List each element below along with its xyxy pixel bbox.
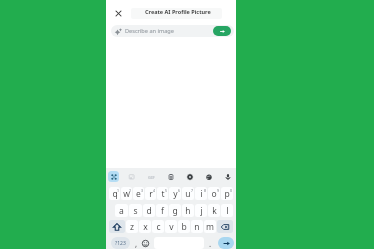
button[interactable]: g [169,204,181,217]
button[interactable]: Emoji [139,237,152,249]
staticText: 1 [117,188,120,193]
staticText: d [146,205,152,217]
staticText: . [209,238,212,249]
staticText: m [206,221,214,233]
button[interactable]: s [129,204,142,217]
button[interactable]: l [221,204,233,217]
staticText: a [119,205,124,217]
button[interactable]: w [121,187,132,200]
staticText: c [156,221,161,233]
button[interactable]: b [178,220,190,233]
staticText: 9 [217,188,220,193]
button[interactable]: e [133,187,144,200]
staticText: h [185,205,191,217]
button[interactable]: , [130,237,143,249]
button[interactable]: Close [112,7,125,20]
button[interactable]: n [191,220,203,233]
staticText: 8 [204,188,207,193]
staticText: y [173,188,178,200]
staticText: q [112,188,118,200]
button[interactable]: z [126,220,138,233]
staticText: x [143,221,148,233]
staticText: w [123,188,130,200]
button[interactable]: y [169,187,181,200]
button[interactable]: o [208,187,220,200]
staticText: g [172,205,178,217]
staticText: i [200,188,203,200]
button[interactable]: x [139,220,151,233]
button[interactable]: . [204,237,216,249]
staticText: 3 [141,188,144,193]
button[interactable]: Backspace [217,220,233,233]
staticText: k [212,205,217,217]
button[interactable]: Send [213,26,231,36]
staticText: 6 [178,188,181,193]
button[interactable]: f [156,204,168,217]
staticText: l [226,205,229,217]
button[interactable]: Enter [218,237,234,249]
button[interactable]: Photos [126,171,138,183]
staticText: 2 [129,188,132,193]
button[interactable]: a [115,204,128,217]
button[interactable]: Google search [108,171,119,182]
button[interactable]: v [165,220,177,233]
staticText: z [130,221,134,233]
button[interactable]: u [182,187,194,200]
staticText: , [135,238,138,249]
button[interactable]: GIF [145,171,157,183]
staticText: p [224,188,230,200]
staticText: 4 [153,188,156,193]
button[interactable]: Voice input [222,171,234,183]
button[interactable]: t [157,187,168,200]
staticText: b [181,221,187,233]
button[interactable]: Themes [203,171,215,183]
staticText: 7 [191,188,194,193]
staticText: o [211,188,217,200]
button[interactable]: q [109,187,120,200]
button[interactable]: Clipboard [165,171,177,183]
button[interactable]: ?123 [111,237,130,249]
staticText: e [136,188,141,200]
button[interactable]: Shift [109,220,125,233]
staticText: s [133,205,138,217]
staticText: u [185,188,191,200]
staticText: n [194,221,200,233]
button[interactable]: k [208,204,220,217]
button[interactable]: p [221,187,233,200]
staticText: Create AI Profile Picture [145,8,211,15]
staticText: v [169,221,174,233]
button[interactable]: h [182,204,194,217]
staticText: 0 [230,188,233,193]
staticText: r [149,188,153,200]
button[interactable]: r [145,187,156,200]
staticText: 5 [165,188,168,193]
staticText: Describe an image [125,27,174,35]
staticText: ?123 [115,240,126,247]
staticText: j [200,205,203,217]
button[interactable]: c [152,220,164,233]
staticText: f [161,205,164,217]
staticText: GIF [148,175,155,180]
button[interactable]: i [195,187,207,200]
button[interactable]: Describe an image [111,25,234,37]
button[interactable]: m [204,220,216,233]
staticText: t [161,188,165,200]
button[interactable]: j [195,204,207,217]
button[interactable]: Settings [184,171,196,183]
button[interactable]: d [143,204,155,217]
